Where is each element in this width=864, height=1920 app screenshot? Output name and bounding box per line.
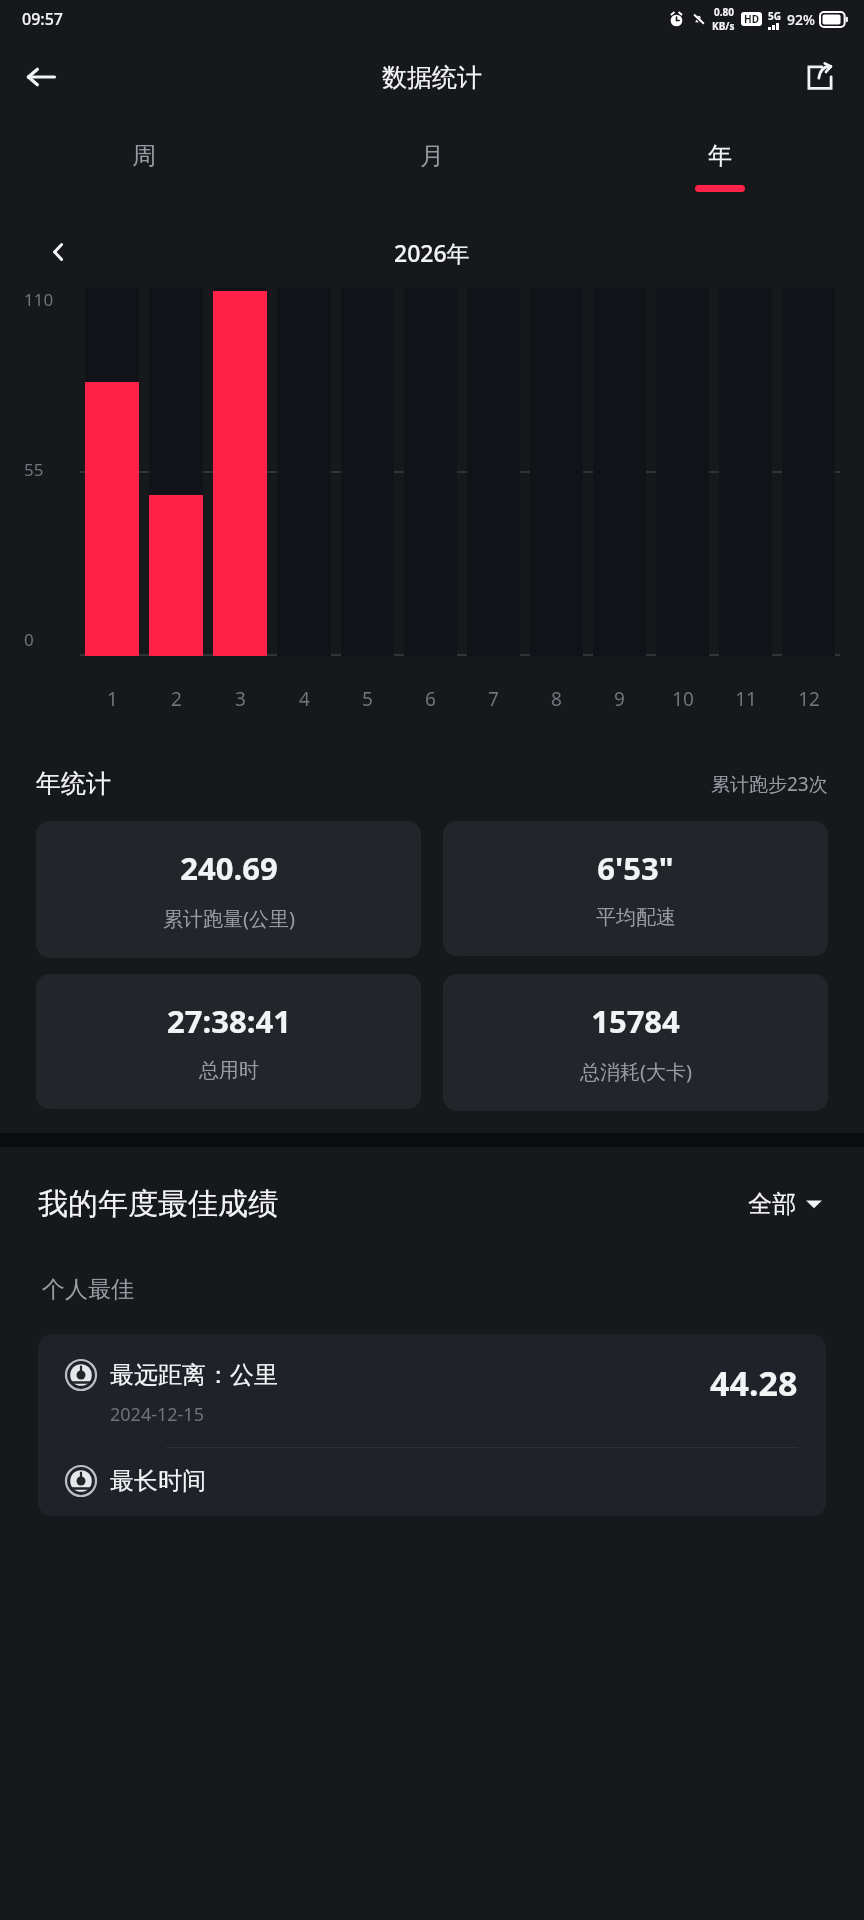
staticText: 累计跑步23次 [711, 771, 828, 797]
button[interactable]: Previous year [36, 229, 82, 275]
button[interactable]: 周 [0, 116, 288, 216]
staticText: 年 [708, 141, 732, 171]
button[interactable]: 年 [576, 116, 864, 216]
staticText: 12 [798, 686, 820, 712]
staticText: 6'53" [597, 847, 674, 889]
button[interactable]: 最远距离：公里 [38, 1334, 826, 1516]
staticText: 8 [551, 686, 562, 712]
staticText: 44.28 [710, 1360, 798, 1406]
staticText: 27:38:41 [167, 1000, 291, 1042]
staticText: HD [744, 12, 759, 26]
staticText: 年统计 [36, 768, 111, 799]
button[interactable]: 27:38:41 [36, 974, 421, 1109]
staticText: 09:57 [22, 8, 63, 30]
staticText: 1 [107, 686, 118, 712]
staticText: KB/s [712, 19, 735, 33]
staticText: 总用时 [199, 1058, 259, 1083]
staticText: 月 [420, 141, 444, 171]
staticText: 6 [425, 686, 436, 712]
button[interactable]: 月 [288, 116, 576, 216]
staticText: 55 [24, 458, 44, 481]
staticText: 4 [299, 686, 310, 712]
staticText: 我的年度最佳成绩 [38, 1185, 278, 1223]
staticText: 0 [24, 628, 34, 651]
button[interactable]: 全部 [744, 1185, 826, 1223]
staticText: 0.80 [714, 5, 734, 19]
button[interactable]: Back [14, 50, 68, 104]
staticText: 92% [787, 10, 815, 29]
staticText: 2026年 [394, 237, 470, 268]
button[interactable]: Share [794, 51, 846, 103]
button[interactable]: 240.69 [36, 821, 421, 958]
staticText: 9 [614, 686, 625, 712]
staticText: 最长时间 [110, 1466, 206, 1496]
staticText: 数据统计 [382, 62, 482, 93]
staticText: 11 [735, 686, 757, 712]
staticText: 5G [768, 9, 781, 23]
staticText: 7 [488, 686, 499, 712]
staticText: 110 [24, 288, 54, 311]
button[interactable]: 6'53" [443, 821, 828, 956]
staticText: 10 [672, 686, 694, 712]
staticText: 240.69 [180, 847, 278, 889]
staticText: 总消耗(大卡) [580, 1058, 692, 1085]
button[interactable]: 15784 [443, 974, 828, 1111]
staticText: 2024-12-15 [110, 1402, 204, 1427]
staticText: 个人最佳 [42, 1275, 134, 1304]
staticText: 最远距离：公里 [110, 1360, 278, 1390]
staticText: 5 [362, 686, 373, 712]
staticText: 2 [171, 686, 182, 712]
staticText: 累计跑量(公里) [163, 905, 295, 932]
staticText: 周 [132, 141, 156, 171]
staticText: 15784 [591, 1000, 680, 1042]
staticText: 3 [235, 686, 246, 712]
staticText: 平均配速 [596, 905, 676, 930]
staticText: 全部 [748, 1189, 796, 1219]
